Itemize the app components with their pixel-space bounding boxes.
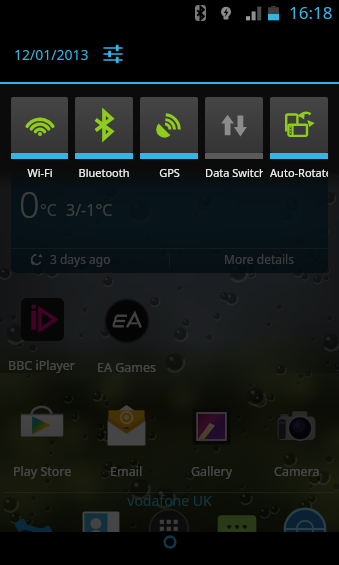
button[interactable]: BBC iPlayer xyxy=(0,298,84,374)
staticText: 3 days ago xyxy=(50,251,111,267)
button[interactable]: Contacts xyxy=(67,506,135,552)
staticText: Gallery xyxy=(191,463,233,480)
staticText: Data Switch xyxy=(205,165,263,180)
button[interactable]: Camera xyxy=(254,404,339,480)
button[interactable]: Email xyxy=(84,404,169,480)
button[interactable]: Settings xyxy=(99,40,127,68)
button[interactable]: Phone xyxy=(0,506,67,552)
staticText: EA Games xyxy=(97,359,157,376)
staticText: 12/01/2013 xyxy=(14,45,89,64)
button[interactable]: Auto-Rotate xyxy=(270,97,328,180)
button[interactable]: Wi-Fi xyxy=(11,97,68,180)
staticText: Camera xyxy=(274,463,320,480)
button[interactable]: Play Store xyxy=(0,404,84,480)
button[interactable]: Messaging xyxy=(203,506,271,552)
button[interactable]: Apps xyxy=(135,506,203,552)
button[interactable]: More details xyxy=(224,249,294,269)
staticText: Bluetooth xyxy=(78,165,130,180)
button[interactable]: Bluetooth xyxy=(75,97,133,180)
button[interactable]: Home xyxy=(155,527,185,557)
staticText: GPS xyxy=(159,165,180,180)
staticText: BBC iPlayer xyxy=(8,357,76,374)
button[interactable]: 3 days ago xyxy=(30,249,111,269)
staticText: vodafone UK xyxy=(0,491,339,510)
staticText: 16:18 xyxy=(289,1,333,24)
staticText: Email xyxy=(110,463,143,480)
staticText: Play Store xyxy=(13,463,72,480)
staticText: Auto-Rotate xyxy=(270,165,328,180)
staticText: More details xyxy=(224,251,294,267)
button[interactable]: EA Games xyxy=(84,298,169,376)
staticText: 0 xyxy=(19,180,40,229)
button[interactable]: Gallery xyxy=(169,404,254,480)
staticText: Wi-Fi xyxy=(27,165,53,180)
button[interactable]: GPS xyxy=(140,97,198,180)
staticText: 3/-1°C xyxy=(66,199,113,221)
button[interactable]: Data Switch xyxy=(205,97,263,180)
staticText: °C xyxy=(40,199,57,221)
button[interactable]: Browser xyxy=(271,506,339,552)
